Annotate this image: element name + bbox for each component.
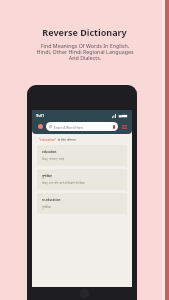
button[interactable]: Home	[80, 289, 89, 298]
button[interactable]: Menu	[122, 125, 127, 129]
button[interactable]: पुनर्शिक्षा	[37, 169, 127, 190]
button[interactable]: re-education	[37, 193, 127, 214]
button[interactable]: education	[37, 145, 127, 166]
staticText: के लिए परिणाम	[57, 138, 76, 142]
button[interactable]: Enter A Word Here	[46, 122, 118, 131]
staticText: पुनर्शिक्षा	[42, 205, 51, 209]
staticText: शिक्षा, ज्ञान और पढ़ने से सिखाने की शिक्…	[42, 181, 85, 185]
staticText: "education"	[39, 138, 57, 142]
staticText: Enter A Word Here	[54, 125, 83, 129]
staticText: 9:41	[36, 113, 45, 119]
staticText: शिक्षा, अध्ययन, पढ़ाई	[42, 157, 65, 161]
staticText: education	[42, 150, 57, 154]
button[interactable]: App logo	[38, 124, 43, 129]
staticText: Find Meanings Of Words In English, Hindi…	[25, 42, 145, 61]
staticText: Reverse Dictionary	[42, 26, 127, 38]
staticText: पुनर्शिक्षा	[42, 174, 52, 178]
staticText: re-education	[42, 198, 61, 202]
